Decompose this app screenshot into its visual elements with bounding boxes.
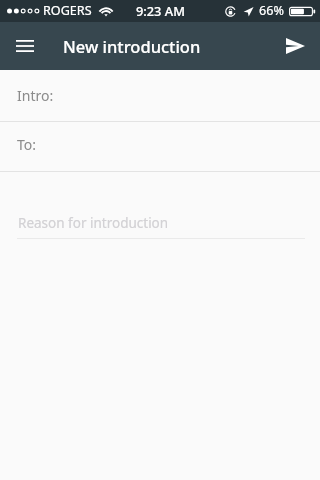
button[interactable]: Reason for introduction	[0, 214, 320, 334]
button[interactable]: Send	[273, 25, 315, 67]
button[interactable]: Menu	[4, 25, 46, 67]
staticText: New introduction	[63, 35, 201, 57]
button[interactable]: Intro:	[0, 70, 320, 121]
staticText: ROGERS	[43, 2, 92, 19]
button[interactable]: To:	[0, 122, 320, 171]
staticText: 9:23 AM	[136, 2, 185, 19]
staticText: 66%	[259, 2, 284, 19]
staticText: To:	[17, 135, 37, 154]
staticText: Intro:	[17, 86, 54, 105]
staticText: Reason for introduction	[18, 214, 169, 232]
